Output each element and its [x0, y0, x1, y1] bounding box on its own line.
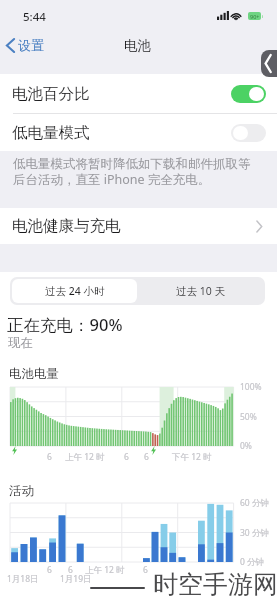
staticText: 现在 — [8, 335, 33, 351]
staticText: 低电量模式 — [12, 123, 90, 143]
button[interactable]: 电池百分比 — [0, 74, 277, 113]
staticText: 下午 12 时 — [172, 451, 212, 463]
staticText: 0 分钟 — [240, 556, 265, 568]
staticText: 50% — [240, 411, 257, 423]
staticText: 6 — [124, 451, 129, 463]
staticText: 1月19日 — [60, 573, 92, 585]
staticText: 正在充电：90% — [7, 313, 123, 336]
staticText: 低电量模式将暂时降低如下载和邮件抓取等 后台活动，直至 iPhone 完全充电。 — [13, 156, 269, 187]
staticText: 60 分钟 — [240, 497, 269, 509]
staticText: 电池 — [124, 37, 151, 54]
staticText: 0% — [240, 440, 252, 452]
staticText: 电池百分比 — [12, 84, 90, 104]
staticText: 电池健康与充电 — [12, 216, 121, 236]
staticText: 1月18日 — [7, 573, 39, 585]
button[interactable]: Back — [261, 50, 277, 77]
staticText: 时空手游网 — [153, 569, 277, 600]
staticText: 100% — [240, 381, 262, 393]
staticText: 6 — [47, 451, 52, 463]
staticText: 上午 12 时 — [85, 564, 125, 576]
staticText: 5:44 — [23, 9, 46, 25]
button[interactable]: 过去 10 天 — [137, 279, 263, 303]
button[interactable]: 电池健康与充电 — [0, 208, 277, 244]
staticText: 6 — [144, 451, 149, 463]
staticText: 90+ — [250, 13, 260, 20]
staticText: 上午 12 时 — [65, 451, 105, 463]
button[interactable]: 低电量模式 — [0, 114, 277, 151]
button[interactable]: 设置 — [6, 37, 44, 53]
staticText: 活动 — [9, 483, 34, 499]
staticText: 6 — [143, 564, 148, 576]
staticText: 过去 24 小时 — [45, 284, 105, 298]
staticText: 电池电量 — [9, 366, 59, 382]
button[interactable]: 过去 24 小时 — [12, 279, 137, 303]
staticText: 30 分钟 — [240, 527, 269, 539]
staticText: 6 — [68, 564, 73, 576]
staticText: 设置 — [18, 37, 44, 53]
staticText: 过去 10 天 — [176, 284, 225, 298]
staticText: 6 — [47, 564, 52, 576]
